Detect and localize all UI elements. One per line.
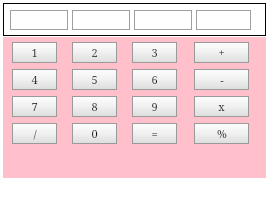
staticText: 0 [91,126,98,141]
staticText: 7 [31,99,38,114]
button[interactable]: Number input [196,10,251,30]
staticText: % [217,126,227,141]
button[interactable]: 6 [132,69,177,90]
staticText: 5 [91,72,98,87]
staticText: 9 [151,99,158,114]
staticText: 4 [31,72,38,87]
button[interactable]: 1 [12,42,57,63]
button[interactable]: % [194,123,249,144]
staticText: = [151,126,158,141]
staticText: x [218,99,225,114]
button[interactable]: 2 [72,42,117,63]
button[interactable]: Number input [72,10,130,30]
button[interactable]: = [132,123,177,144]
staticText: / [33,126,37,141]
button[interactable]: - [194,69,249,90]
button[interactable]: 9 [132,96,177,117]
button[interactable]: x [194,96,249,117]
button[interactable]: 0 [72,123,117,144]
button[interactable]: 8 [72,96,117,117]
staticText: 1 [31,45,38,60]
staticText: + [218,45,225,60]
staticText: - [220,72,224,87]
button[interactable]: 4 [12,69,57,90]
button[interactable]: + [194,42,249,63]
staticText: 8 [91,99,98,114]
button[interactable]: 7 [12,96,57,117]
button[interactable]: Number input [10,10,68,30]
staticText: 6 [151,72,158,87]
button[interactable]: 5 [72,69,117,90]
button[interactable]: / [12,123,57,144]
button[interactable]: 3 [132,42,177,63]
staticText: 2 [91,45,98,60]
staticText: 3 [151,45,158,60]
button[interactable]: Number input [134,10,192,30]
